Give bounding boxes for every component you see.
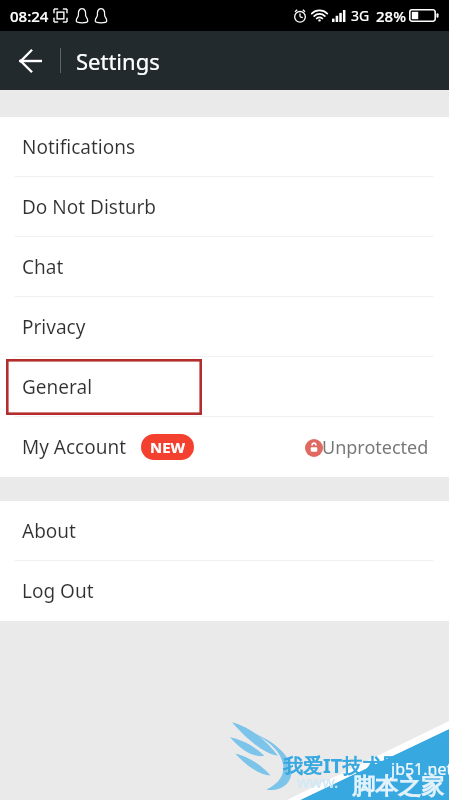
button[interactable]: General [0,357,449,417]
button[interactable]: Log Out [0,561,449,621]
staticText: NEW [150,437,186,457]
staticText: Notifications [22,134,136,160]
button[interactable]: Notifications [0,117,449,177]
button[interactable]: Chat [0,237,449,297]
staticText: Do Not Disturb [22,194,157,220]
button[interactable]: Back [0,31,60,90]
staticText: 3G [351,6,370,25]
staticText: My Account [22,434,127,460]
staticText: General [22,374,93,400]
staticText: 脚本之家 [352,772,444,800]
staticText: About [22,518,76,544]
button[interactable]: Do Not Disturb [0,177,449,237]
button[interactable]: Privacy [0,297,449,357]
button[interactable]: About [0,501,449,561]
staticText: 我爱IT技术网 [283,752,403,779]
staticText: Chat [22,254,64,280]
button[interactable]: My Account [0,417,449,477]
staticText: Unprotected [322,435,429,460]
staticText: Privacy [22,314,86,340]
staticText: 08:24 [10,6,49,26]
staticText: Settings [76,46,160,76]
staticText: Log Out [22,578,94,604]
staticText: 28% [376,6,406,26]
staticText: www. [297,771,339,793]
staticText: jb51.net [391,758,449,780]
